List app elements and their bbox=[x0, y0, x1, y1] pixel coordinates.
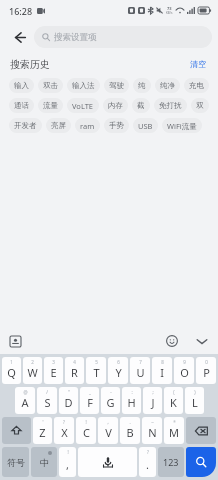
button[interactable]: @ bbox=[15, 387, 35, 414]
button[interactable]: : bbox=[122, 387, 141, 414]
button[interactable]: ! bbox=[76, 417, 96, 444]
staticText: , bbox=[66, 457, 69, 472]
button[interactable]: ! bbox=[59, 447, 76, 477]
button[interactable]: 0 bbox=[196, 357, 216, 384]
button[interactable]: 充电 bbox=[184, 78, 209, 93]
staticText: R bbox=[71, 365, 78, 380]
staticText: ram bbox=[80, 121, 95, 131]
button[interactable]: Emoji bbox=[162, 331, 182, 351]
button[interactable]: 纯 bbox=[133, 78, 151, 93]
button[interactable]: Search bbox=[186, 447, 216, 477]
staticText: - bbox=[110, 389, 112, 395]
button[interactable]: ? bbox=[139, 447, 156, 477]
button[interactable]: ' bbox=[33, 417, 52, 444]
staticText: U bbox=[136, 365, 145, 380]
button[interactable]: ) bbox=[185, 387, 204, 414]
button[interactable]: 符号 bbox=[2, 447, 29, 477]
button[interactable]: 9 bbox=[174, 357, 194, 384]
button[interactable]: . bbox=[120, 417, 140, 444]
button[interactable]: Clipboard bbox=[5, 331, 25, 351]
button[interactable]: 2 bbox=[23, 357, 42, 384]
staticText: H bbox=[127, 395, 136, 410]
staticText: 清空 bbox=[190, 59, 206, 69]
button[interactable]: Back bbox=[6, 24, 32, 50]
staticText: KB/s bbox=[166, 11, 173, 15]
staticText: 4 bbox=[73, 359, 76, 365]
button[interactable]: / bbox=[37, 387, 57, 414]
button[interactable]: 免打扰 bbox=[154, 98, 187, 113]
button[interactable]: 输入 bbox=[9, 78, 34, 93]
staticText: E bbox=[50, 365, 57, 380]
staticText: / bbox=[46, 389, 48, 395]
button[interactable]: VoLTE bbox=[67, 98, 99, 113]
button[interactable]: 截 bbox=[132, 98, 150, 113]
button[interactable]: Hide keyboard bbox=[192, 331, 212, 351]
button[interactable]: ram bbox=[75, 118, 100, 133]
staticText: ? bbox=[63, 419, 65, 425]
button[interactable]: _ bbox=[80, 387, 99, 414]
button[interactable]: 5 bbox=[86, 357, 106, 384]
staticText: A bbox=[21, 395, 29, 410]
staticText: 5 bbox=[95, 359, 98, 365]
staticText: USB bbox=[138, 121, 153, 131]
button[interactable]: * bbox=[164, 417, 184, 444]
staticText: C bbox=[83, 425, 90, 440]
staticText: F bbox=[87, 395, 93, 410]
button[interactable]: 6 bbox=[108, 357, 128, 384]
button[interactable]: 流量 bbox=[38, 98, 63, 113]
staticText: 手势 bbox=[109, 121, 124, 130]
button[interactable]: , bbox=[98, 417, 118, 444]
button[interactable]: 亮屏 bbox=[46, 118, 71, 133]
button[interactable]: 内存 bbox=[103, 98, 128, 113]
button[interactable]: Shift bbox=[2, 417, 31, 444]
staticText: 双开 bbox=[196, 101, 204, 110]
button[interactable]: WiFi流量 bbox=[162, 118, 202, 133]
staticText: 73 bbox=[167, 6, 172, 11]
button[interactable]: 1 bbox=[2, 357, 21, 384]
staticText: 中 bbox=[40, 457, 49, 468]
button[interactable]: 纯净 bbox=[155, 78, 180, 93]
staticText: V bbox=[105, 425, 112, 440]
button[interactable]: 输入法 bbox=[67, 78, 100, 93]
button[interactable]: 8 bbox=[152, 357, 172, 384]
staticText: WiFi流量 bbox=[167, 121, 197, 131]
button[interactable]: " bbox=[59, 387, 78, 414]
staticText: 6 bbox=[117, 359, 120, 365]
button[interactable]: ~ bbox=[142, 417, 162, 444]
button[interactable]: ( bbox=[164, 387, 183, 414]
staticText: J bbox=[151, 395, 155, 410]
staticText: ; bbox=[152, 389, 154, 395]
button[interactable]: 双击 bbox=[38, 78, 63, 93]
button[interactable]: - bbox=[101, 387, 120, 414]
staticText: ( bbox=[173, 389, 175, 395]
button[interactable]: 开发者 bbox=[9, 118, 42, 133]
button[interactable]: 手势 bbox=[104, 118, 129, 133]
button[interactable]: USB bbox=[133, 118, 158, 133]
staticText: 充电 bbox=[189, 81, 204, 90]
staticText: 7 bbox=[139, 359, 142, 365]
staticText: 开发者 bbox=[14, 121, 37, 130]
button[interactable]: 3 bbox=[44, 357, 63, 384]
button[interactable]: Backspace bbox=[186, 417, 216, 444]
staticText: G bbox=[106, 395, 115, 410]
button[interactable]: Space / Voice input bbox=[78, 447, 137, 477]
staticText: Q bbox=[7, 365, 16, 380]
staticText: Y bbox=[115, 365, 122, 380]
button[interactable]: 123 bbox=[158, 447, 184, 477]
button[interactable]: 清空 bbox=[188, 57, 208, 71]
button[interactable]: 中 bbox=[31, 447, 57, 477]
button[interactable]: 通话 bbox=[9, 98, 34, 113]
staticText: 纯 bbox=[138, 81, 146, 90]
button[interactable]: 驾驶 bbox=[104, 78, 129, 93]
button[interactable]: 4 bbox=[65, 357, 84, 384]
button[interactable]: ; bbox=[143, 387, 162, 414]
button[interactable]: 7 bbox=[130, 357, 150, 384]
button[interactable]: ? bbox=[54, 417, 74, 444]
staticText: 纯净 bbox=[160, 81, 175, 90]
staticText: P bbox=[203, 365, 210, 380]
staticText: 9 bbox=[183, 359, 186, 365]
button[interactable]: 双开 bbox=[191, 98, 209, 113]
button[interactable]: 搜索设置项 bbox=[34, 26, 212, 48]
staticText: I bbox=[160, 365, 164, 380]
staticText: 输入法 bbox=[72, 81, 95, 90]
